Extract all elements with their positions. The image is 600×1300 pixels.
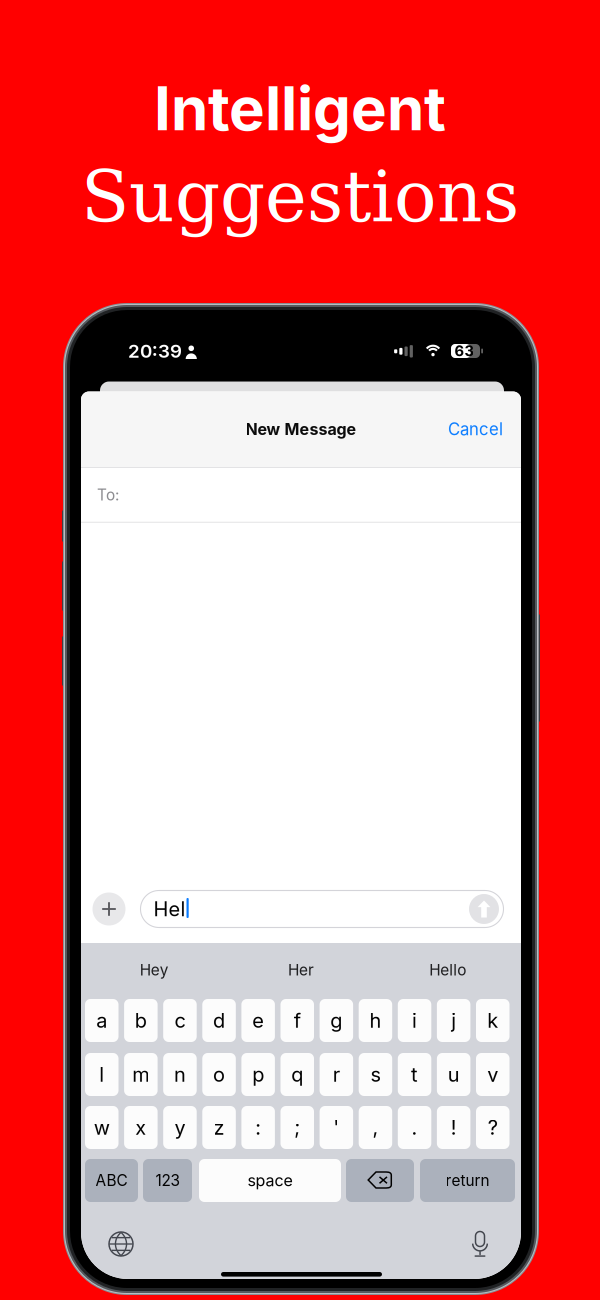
staticText: g [330,1008,342,1033]
button[interactable]: v [476,1053,509,1096]
staticText: t [411,1062,418,1087]
button[interactable]: return [420,1159,515,1202]
staticText: 123 [155,1171,179,1190]
button[interactable]: e [241,999,275,1042]
staticText: a [96,1008,107,1033]
staticText: ; [294,1115,300,1140]
button[interactable]: u [437,1053,470,1096]
button[interactable]: , [359,1106,392,1149]
staticText: z [214,1115,225,1140]
staticText: q [291,1062,303,1087]
staticText: Intelligent [154,72,446,145]
button[interactable]: Add attachment [92,892,125,925]
button[interactable]: Dictation [471,1231,489,1258]
button[interactable]: k [476,999,509,1042]
staticText: New Message [245,420,356,439]
button[interactable]: z [202,1106,236,1149]
staticText: o [213,1062,225,1087]
staticText: i [412,1008,417,1033]
staticText: d [213,1008,225,1033]
staticText: w [94,1115,110,1140]
staticText: To: [97,485,119,504]
button[interactable]: ; [280,1106,314,1149]
button[interactable]: b [124,999,158,1042]
button[interactable]: Next keyboard [108,1231,134,1257]
button[interactable]: Delete [346,1159,414,1202]
staticText: Hello [429,961,466,979]
staticText: 20:39 [128,340,182,362]
button[interactable]: : [241,1106,275,1149]
staticText: l [99,1062,104,1087]
staticText: Hel [153,897,185,921]
button[interactable]: t [398,1053,431,1096]
staticText: b [135,1008,147,1033]
button[interactable]: q [280,1053,314,1096]
staticText: e [252,1008,264,1033]
staticText: r [333,1062,340,1087]
button[interactable]: m [124,1053,158,1096]
button[interactable]: f [280,999,314,1042]
staticText: p [252,1062,264,1087]
button[interactable]: d [202,999,236,1042]
staticText: space [247,1171,292,1190]
staticText: k [487,1008,498,1033]
button[interactable]: g [320,999,353,1042]
button[interactable]: Hello [374,945,521,995]
button[interactable]: y [163,1106,197,1149]
staticText: Suggestions [81,156,519,238]
staticText: Her [288,961,314,979]
staticText: ? [488,1115,498,1140]
button[interactable]: n [163,1053,197,1096]
button[interactable]: . [398,1106,431,1149]
button[interactable]: s [359,1053,392,1096]
staticText: h [369,1008,381,1033]
button[interactable]: ' [320,1106,353,1149]
staticText: . [412,1115,418,1140]
button[interactable]: ! [437,1106,470,1149]
button[interactable]: p [241,1053,275,1096]
button[interactable]: Cancel [440,413,511,445]
button[interactable]: Her [228,945,374,995]
button[interactable]: ? [476,1106,509,1149]
staticText: j [451,1008,456,1033]
staticText: ! [451,1115,457,1140]
button[interactable]: x [124,1106,158,1149]
staticText: v [487,1062,498,1087]
staticText: n [174,1062,186,1087]
staticText: u [448,1062,460,1087]
staticText: : [255,1115,261,1140]
button[interactable]: l [85,1053,118,1096]
staticText: 63 [454,342,473,360]
button[interactable]: 123 [143,1159,192,1202]
button[interactable]: a [85,999,118,1042]
button[interactable]: Hey [81,945,228,995]
staticText: f [294,1008,301,1033]
staticText: ABC [95,1171,127,1190]
staticText: c [174,1008,185,1033]
button[interactable]: Send [469,894,499,924]
button[interactable]: space [199,1159,341,1202]
button[interactable]: i [398,999,431,1042]
button[interactable]: h [359,999,392,1042]
staticText: x [135,1115,146,1140]
button[interactable]: c [163,999,197,1042]
button[interactable]: o [202,1053,236,1096]
button[interactable]: w [85,1106,118,1149]
button[interactable]: ABC [85,1159,138,1202]
staticText: y [174,1115,185,1140]
staticText: Hey [140,961,169,979]
staticText: s [370,1062,380,1087]
staticText: Cancel [448,419,503,439]
staticText: m [132,1062,149,1087]
staticText: , [372,1115,378,1140]
button[interactable]: j [437,999,470,1042]
button[interactable]: r [320,1053,353,1096]
staticText: ' [333,1115,339,1140]
staticText: return [445,1171,489,1190]
